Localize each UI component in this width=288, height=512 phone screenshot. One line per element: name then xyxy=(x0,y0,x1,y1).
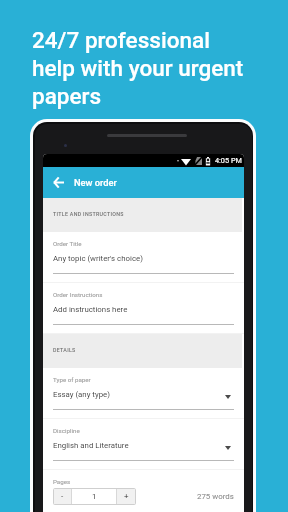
staticText: + xyxy=(124,492,129,501)
staticText: Any topic (writer's choice) xyxy=(53,254,143,263)
staticText: Order Title xyxy=(53,240,82,247)
staticText: New order xyxy=(74,177,117,188)
staticText: 4:05 PM xyxy=(215,156,242,165)
staticText: 1 xyxy=(92,492,97,501)
button[interactable]: Decrease pages xyxy=(53,488,71,505)
staticText: DETAILS xyxy=(53,347,76,353)
staticText: Essay (any type) xyxy=(53,390,110,399)
staticText: English and Literature xyxy=(53,441,129,450)
staticText: TITLE AND INSTRUCTIONS xyxy=(53,211,124,217)
staticText: Add instructions here xyxy=(53,305,128,314)
staticText: 24/7 professional help with your urgent … xyxy=(32,27,244,109)
staticText: Pages xyxy=(53,478,71,485)
staticText: 275 words xyxy=(197,492,234,501)
staticText: - xyxy=(61,492,64,501)
staticText: Discipline xyxy=(53,427,80,434)
staticText: Order Instructions xyxy=(53,291,103,298)
button[interactable]: Increase pages xyxy=(117,488,136,505)
staticText: Type of paper xyxy=(53,376,91,383)
button[interactable]: Back xyxy=(45,167,71,198)
